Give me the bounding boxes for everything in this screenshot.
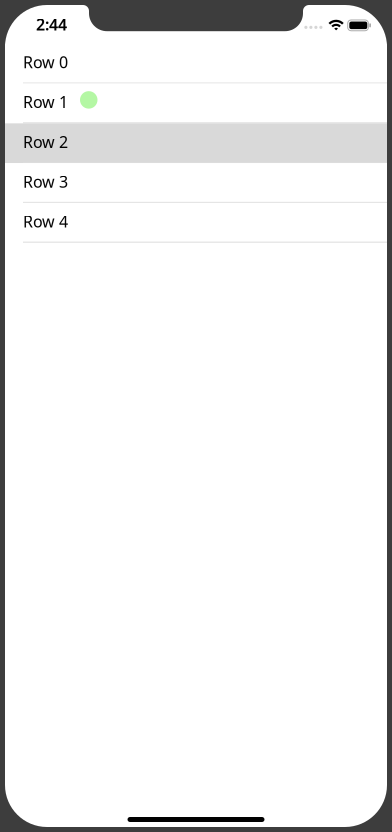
button[interactable]: Row 1 xyxy=(5,83,387,123)
button[interactable]: Row 2 xyxy=(5,123,387,163)
staticText: Row 0 xyxy=(23,51,68,73)
button[interactable]: Row 0 xyxy=(5,44,387,83)
button[interactable]: Row 4 xyxy=(5,203,387,243)
staticText: Row 2 xyxy=(23,131,68,152)
staticText: Row 4 xyxy=(23,211,68,232)
staticText: Row 3 xyxy=(23,171,68,192)
staticText: Row 1 xyxy=(23,91,68,112)
button[interactable]: Row 3 xyxy=(5,163,387,203)
staticText: 2:44 xyxy=(36,14,67,35)
